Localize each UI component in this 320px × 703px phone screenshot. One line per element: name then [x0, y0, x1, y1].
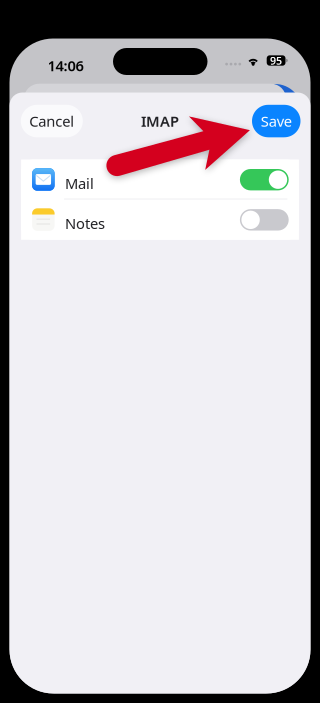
staticText: Mail — [65, 173, 94, 193]
staticText: IMAP — [141, 111, 179, 131]
button[interactable]: Cancel — [21, 105, 83, 137]
staticText: Cancel — [29, 111, 74, 131]
staticText: 14:06 — [47, 56, 83, 75]
staticText: Notes — [65, 214, 105, 233]
staticText: 95 — [270, 53, 282, 68]
button[interactable]: Mail — [21, 159, 299, 200]
button[interactable]: Notes — [21, 200, 299, 240]
button[interactable]: Save — [252, 105, 300, 137]
staticText: Save — [261, 111, 292, 131]
